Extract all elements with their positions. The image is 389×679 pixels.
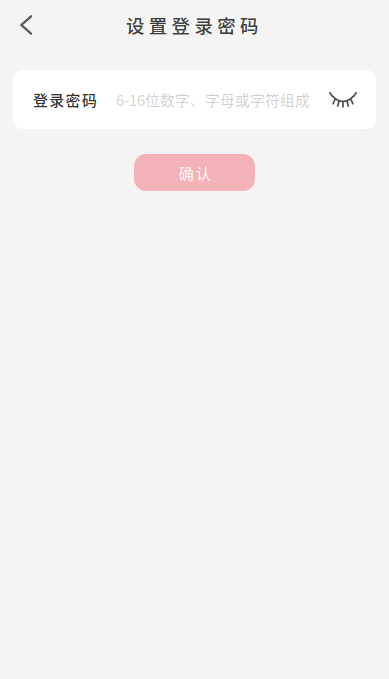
staticText: 认 [196, 161, 211, 184]
staticText: 密 [66, 89, 81, 110]
staticText: 录 [194, 12, 212, 38]
staticText: 码 [82, 89, 97, 110]
staticText: 登 [33, 89, 48, 110]
button[interactable]: Show password [321, 77, 365, 121]
staticText: 设 [126, 12, 144, 38]
staticText: 登 [172, 12, 190, 38]
staticText: 确 [178, 161, 193, 184]
staticText: 录 [49, 89, 64, 110]
staticText: 6-16位数字、字母或字符组成 [116, 89, 310, 110]
button[interactable]: Back [0, 1, 50, 47]
staticText: 密 [217, 12, 235, 38]
staticText: 码 [240, 12, 258, 38]
button[interactable]: 确 [134, 154, 255, 191]
staticText: 置 [149, 12, 167, 38]
